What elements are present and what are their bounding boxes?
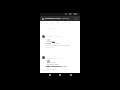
- staticText: label: [50, 40, 55, 43]
- staticText: a second line of body text: [46, 44, 71, 47]
- staticText: third line: [46, 46, 55, 49]
- staticText: Name: [46, 35, 53, 38]
- staticText: Subtitle: [62, 17, 70, 20]
- staticText: label: [51, 61, 56, 64]
- staticText: @handle: [54, 35, 62, 38]
- staticText: Name: [46, 57, 53, 60]
- staticText: Example Name: [45, 17, 61, 20]
- button[interactable]: Profile photo: [42, 35, 45, 38]
- staticText: another line: [47, 63, 59, 66]
- staticText: @handle: [54, 57, 62, 60]
- button[interactable]: Profile photo: [42, 56, 45, 59]
- staticText: subtitle text: [46, 27, 58, 30]
- staticText: shorter line: [46, 68, 57, 71]
